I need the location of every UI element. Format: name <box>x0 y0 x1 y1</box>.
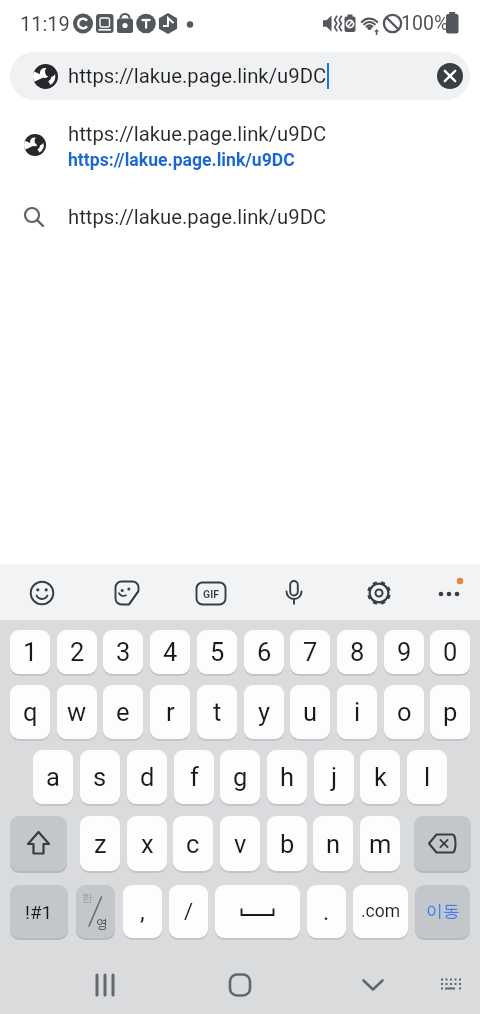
button[interactable] <box>271 570 317 616</box>
button[interactable]: https://lakue.page.link/u9DC <box>0 110 480 186</box>
button[interactable]: 0 <box>430 630 470 674</box>
staticText: s <box>93 762 107 792</box>
staticText: .com <box>361 901 401 922</box>
button[interactable]: !#1 <box>10 885 68 938</box>
button[interactable]: GIF <box>188 570 234 616</box>
staticText: a <box>46 762 60 792</box>
button[interactable]: 2 <box>57 630 97 674</box>
staticText: l <box>424 762 431 792</box>
button[interactable] <box>18 570 66 616</box>
button[interactable]: s <box>80 750 120 804</box>
staticText: 5 <box>210 637 225 667</box>
staticText: i <box>354 697 361 727</box>
staticText: https://lakue.page.link/u9DC <box>68 150 295 171</box>
button[interactable]: 8 <box>337 630 377 674</box>
button[interactable]: i <box>337 685 377 739</box>
staticText: q <box>23 697 38 727</box>
button[interactable]: m <box>360 816 400 871</box>
button[interactable]: 7 <box>290 630 330 674</box>
button[interactable]: n <box>313 816 353 871</box>
staticText: . <box>323 898 330 926</box>
button[interactable] <box>75 951 135 1014</box>
staticText: t <box>213 697 222 727</box>
staticText: 8 <box>350 637 365 667</box>
staticText: g <box>233 762 248 792</box>
staticText: 4 <box>163 637 178 667</box>
button[interactable]: 4 <box>150 630 190 674</box>
button[interactable]: 3 <box>103 630 143 674</box>
button[interactable]: p <box>430 685 470 739</box>
staticText: x <box>141 829 154 859</box>
button[interactable] <box>430 951 470 1014</box>
staticText: c <box>186 829 200 859</box>
staticText: 1 <box>23 637 38 667</box>
button[interactable]: z <box>80 816 120 871</box>
button[interactable] <box>437 63 463 89</box>
button[interactable]: u <box>290 685 330 739</box>
button[interactable] <box>356 570 402 616</box>
staticText: j <box>331 762 338 792</box>
button[interactable]: y <box>244 685 284 739</box>
staticText: 2 <box>70 637 85 667</box>
staticText: 6 <box>257 637 272 667</box>
button[interactable]: d <box>127 750 167 804</box>
staticText: r <box>166 697 175 727</box>
button[interactable]: b <box>267 816 307 871</box>
button[interactable]: v <box>220 816 260 871</box>
button[interactable]: / <box>169 885 208 938</box>
button[interactable]: https://lakue.page.link/u9DC <box>0 192 480 242</box>
staticText: 11:19 <box>20 12 70 35</box>
button[interactable]: w <box>57 685 97 739</box>
staticText: b <box>280 829 295 859</box>
button[interactable]: t <box>197 685 237 739</box>
staticText: o <box>397 697 412 727</box>
staticText: k <box>374 762 387 792</box>
staticText: 7 <box>303 637 318 667</box>
staticText: !#1 <box>25 901 53 923</box>
button[interactable]: 1 <box>10 630 50 674</box>
button[interactable] <box>414 816 471 871</box>
staticText: v <box>234 829 247 859</box>
button[interactable]: x <box>127 816 167 871</box>
staticText: 한 <box>82 891 93 905</box>
staticText: 영 <box>96 916 108 931</box>
button[interactable]: 6 <box>244 630 284 674</box>
button[interactable] <box>210 951 270 1014</box>
button[interactable]: 9 <box>384 630 424 674</box>
staticText: https://lakue.page.link/u9DC <box>68 64 327 88</box>
button[interactable]: k <box>360 750 400 804</box>
staticText: https://lakue.page.link/u9DC <box>68 122 327 146</box>
staticText: , <box>140 898 145 926</box>
button[interactable]: o <box>384 685 424 739</box>
staticText: 9 <box>397 637 412 667</box>
button[interactable] <box>428 570 472 616</box>
button[interactable]: c <box>173 816 213 871</box>
staticText: n <box>326 829 341 859</box>
button[interactable]: 5 <box>197 630 237 674</box>
button[interactable]: , <box>123 885 162 938</box>
button[interactable] <box>415 885 470 938</box>
button[interactable]: q <box>10 685 50 739</box>
button[interactable]: l <box>407 750 447 804</box>
button[interactable] <box>10 816 67 871</box>
button[interactable] <box>215 885 300 938</box>
button[interactable]: .com <box>353 885 408 938</box>
staticText: p <box>443 697 458 727</box>
button[interactable]: . <box>307 885 346 938</box>
button[interactable]: https://lakue.page.link/u9DC <box>10 52 470 100</box>
staticText: u <box>303 697 318 727</box>
button[interactable]: f <box>174 750 214 804</box>
button[interactable]: g <box>220 750 260 804</box>
button[interactable]: h <box>267 750 307 804</box>
staticText: m <box>369 829 392 859</box>
button[interactable] <box>103 570 151 616</box>
button[interactable]: a <box>33 750 73 804</box>
staticText: 이동 <box>426 901 460 922</box>
button[interactable] <box>343 951 403 1014</box>
button[interactable]: j <box>314 750 354 804</box>
button[interactable] <box>76 885 115 938</box>
staticText: w <box>67 697 87 727</box>
button[interactable]: e <box>103 685 143 739</box>
button[interactable]: r <box>150 685 190 739</box>
staticText: / <box>184 899 194 925</box>
